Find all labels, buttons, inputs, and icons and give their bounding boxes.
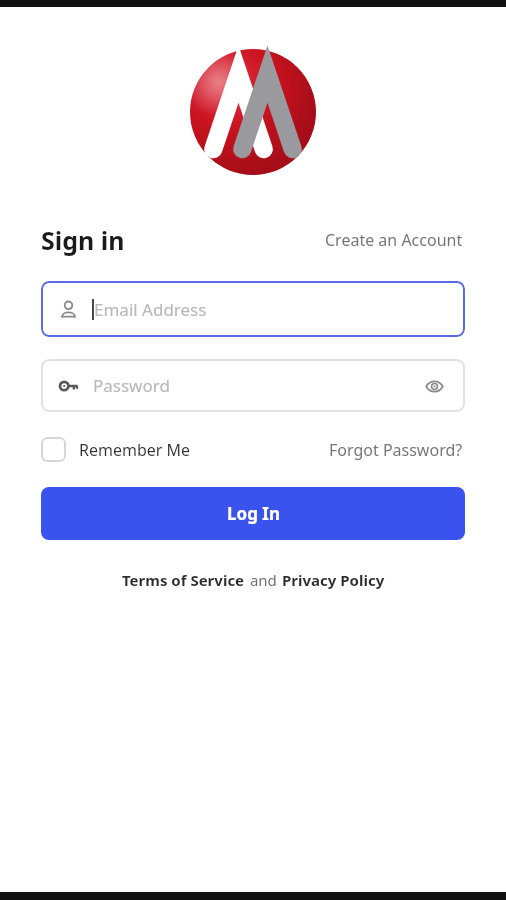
staticText: Create an Account bbox=[325, 229, 463, 251]
button[interactable]: Email Address bbox=[41, 281, 465, 337]
button[interactable]: Remember Me bbox=[41, 433, 191, 466]
staticText: Terms of Service bbox=[122, 570, 245, 590]
staticText: Sign in bbox=[41, 223, 125, 257]
staticText: Log In bbox=[227, 502, 280, 525]
button[interactable]: Log In bbox=[41, 487, 465, 540]
staticText: Email Address bbox=[94, 298, 207, 321]
button[interactable]: Sign in bbox=[41, 223, 125, 257]
staticText: Privacy Policy bbox=[282, 570, 385, 590]
staticText: Forgot Password? bbox=[329, 439, 463, 461]
button[interactable]: Terms of Service bbox=[121, 567, 246, 593]
staticText: Remember Me bbox=[79, 439, 191, 461]
button[interactable]: Forgot Password? bbox=[327, 435, 465, 465]
button[interactable]: Password bbox=[41, 359, 465, 412]
button[interactable]: Create an Account bbox=[323, 225, 465, 255]
button[interactable]: Privacy Policy bbox=[281, 567, 386, 593]
staticText: Password bbox=[93, 374, 170, 397]
button[interactable]: Show password bbox=[419, 371, 449, 401]
staticText: and bbox=[246, 570, 281, 590]
